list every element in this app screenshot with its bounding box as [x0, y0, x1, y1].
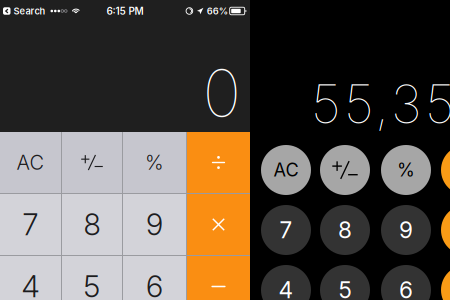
button[interactable]: 7: [261, 205, 311, 255]
staticText: 55,35: [311, 72, 450, 136]
staticText: 5: [83, 269, 100, 300]
staticText: 8: [338, 216, 352, 244]
button[interactable]: Subtract: [441, 265, 450, 300]
staticText: 4: [278, 276, 293, 300]
button[interactable]: 9: [123, 194, 186, 255]
staticText: 6: [146, 269, 163, 300]
button[interactable]: 9: [381, 205, 431, 255]
button[interactable]: Search: [3, 5, 45, 17]
button[interactable]: Plus minus: [320, 145, 370, 195]
button[interactable]: Subtract: [187, 256, 250, 300]
staticText: 9: [399, 216, 413, 244]
button[interactable]: 5: [62, 256, 122, 300]
button[interactable]: Divide: [187, 132, 250, 193]
button[interactable]: Multiply: [441, 205, 450, 255]
staticText: 5: [338, 276, 351, 300]
button[interactable]: 8: [62, 194, 122, 255]
staticText: 66%: [207, 5, 228, 17]
staticText: 4: [21, 269, 39, 300]
button[interactable]: 8: [320, 205, 370, 255]
staticText: 6:15 PM: [106, 5, 143, 17]
button[interactable]: 5: [320, 265, 370, 300]
button[interactable]: 7: [0, 194, 61, 255]
button[interactable]: %: [381, 145, 431, 195]
staticText: %: [397, 159, 415, 181]
button[interactable]: 6: [381, 265, 431, 300]
button[interactable]: 4: [261, 265, 311, 300]
staticText: 8: [83, 207, 100, 242]
button[interactable]: Divide: [441, 145, 450, 195]
button[interactable]: %: [123, 132, 186, 193]
staticText: 9: [146, 207, 163, 242]
button[interactable]: 6: [123, 256, 186, 300]
button[interactable]: Plus minus: [62, 132, 122, 193]
button[interactable]: AC: [261, 145, 311, 195]
staticText: 7: [22, 207, 38, 242]
staticText: %: [145, 150, 164, 175]
staticText: AC: [273, 159, 298, 181]
staticText: AC: [16, 150, 44, 175]
staticText: 0: [202, 53, 241, 132]
staticText: Search: [13, 5, 45, 17]
button[interactable]: 4: [0, 256, 61, 300]
button[interactable]: Multiply: [187, 194, 250, 255]
button[interactable]: AC: [0, 132, 61, 193]
staticText: 7: [279, 216, 292, 244]
staticText: 6: [399, 276, 413, 300]
